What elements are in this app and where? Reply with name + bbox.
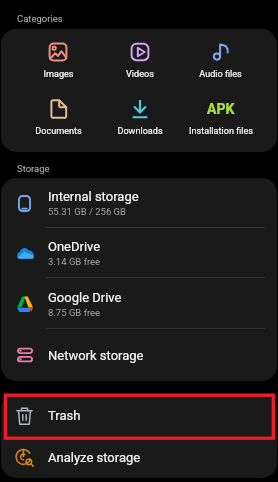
staticText: Internal storage xyxy=(48,189,139,204)
staticText: 55.31 GB / 256 GB xyxy=(48,206,127,217)
button[interactable]: Trash xyxy=(1,394,277,437)
button[interactable]: Images xyxy=(17,42,99,80)
staticText: Installation files xyxy=(189,126,253,137)
staticText: Documents xyxy=(35,126,82,137)
staticText: Storage xyxy=(17,163,50,174)
staticText: OneDrive xyxy=(48,239,101,254)
button[interactable]: APK xyxy=(180,99,261,137)
staticText: Audio files xyxy=(199,69,242,80)
button[interactable]: Analyze storage xyxy=(1,437,277,478)
button[interactable]: Audio files xyxy=(180,42,261,80)
button[interactable]: Google Drive xyxy=(1,278,277,329)
staticText: 3.14 GB free xyxy=(48,256,101,267)
staticText: Analyze storage xyxy=(48,450,141,465)
staticText: Categories xyxy=(17,13,63,24)
staticText: Google Drive xyxy=(48,290,122,305)
button[interactable]: OneDrive xyxy=(1,228,277,278)
staticText: APK xyxy=(207,101,235,117)
staticText: Images xyxy=(43,69,74,80)
button[interactable]: Documents xyxy=(17,99,99,137)
staticText: Trash xyxy=(48,408,81,423)
button[interactable]: Videos xyxy=(99,42,180,80)
staticText: Videos xyxy=(126,69,154,80)
button[interactable]: Downloads xyxy=(99,99,180,137)
staticText: Network storage xyxy=(48,348,144,363)
button[interactable]: Network storage xyxy=(1,329,277,381)
button[interactable]: Internal storage xyxy=(1,178,277,228)
staticText: Downloads xyxy=(117,126,163,137)
staticText: 8.75 GB free xyxy=(48,307,101,318)
